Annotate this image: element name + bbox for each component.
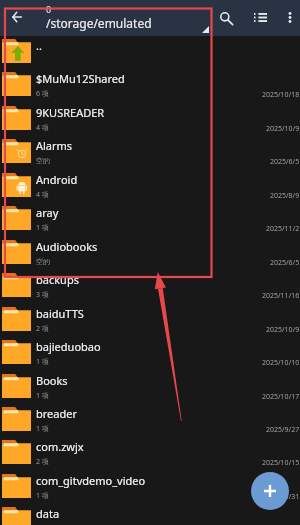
staticText: baiduTTS <box>36 306 236 321</box>
staticText: Alarms <box>36 138 236 153</box>
staticText: Android <box>36 172 236 187</box>
staticText: 2 项 <box>36 457 49 467</box>
staticText: 2025/10/31 <box>262 492 300 502</box>
staticText: 1 项 <box>36 491 49 501</box>
button[interactable]: View mode <box>247 4 273 32</box>
staticText: Audiobooks <box>36 239 236 254</box>
button[interactable]: bajieduobao <box>0 337 300 370</box>
staticText: data <box>36 506 236 521</box>
button[interactable]: Audiobooks <box>0 237 300 270</box>
staticText: aray <box>36 205 236 220</box>
staticText: 4 项 <box>36 190 49 200</box>
staticText: backups <box>36 272 236 287</box>
staticText: 空的 <box>36 257 50 266</box>
staticText: com.zwjx <box>36 439 236 454</box>
staticText: 2025/6/5 <box>270 157 300 167</box>
staticText: 1 项 <box>36 391 49 401</box>
staticText: 2 项 <box>36 324 49 334</box>
staticText: breader <box>36 406 236 421</box>
staticText: 2025/10/17 <box>262 392 300 402</box>
button[interactable]: data <box>0 504 300 525</box>
staticText: 1 项 <box>36 424 49 434</box>
staticText: 2025/9/27 <box>266 425 300 435</box>
staticText: 2025/10/18 <box>262 90 300 100</box>
staticText: Books <box>36 373 236 388</box>
button[interactable]: aray <box>0 203 300 236</box>
button[interactable]: breader <box>0 404 300 437</box>
button[interactable]: Alarms <box>0 136 300 169</box>
staticText: 4 项 <box>36 123 49 133</box>
staticText: bajieduobao <box>36 339 236 354</box>
button[interactable]: Search <box>213 4 239 32</box>
button[interactable]: 9KUSREADER <box>0 103 300 136</box>
staticText: 1 项 <box>36 223 49 233</box>
staticText: /storage/emulated <box>46 15 152 31</box>
staticText: 2025/11/2 <box>266 224 300 234</box>
button[interactable]: $MuMu12Shared <box>0 69 300 102</box>
staticText: 6 项 <box>36 89 49 99</box>
staticText: 2025/10/9 <box>266 124 300 134</box>
staticText: 3 项 <box>36 290 49 300</box>
staticText: 2025/10/15 <box>262 458 300 468</box>
button[interactable]: 0 <box>40 1 210 35</box>
staticText: 0 <box>46 3 52 15</box>
staticText: 2025/8/9 <box>270 191 300 201</box>
staticText: 1 项 <box>36 357 49 367</box>
staticText: .. <box>36 38 236 53</box>
staticText: 2025/10/9 <box>266 325 300 335</box>
staticText: com_gitvdemo_video <box>36 473 236 488</box>
staticText: 2025/10/10 <box>262 358 300 368</box>
button[interactable]: More options <box>277 4 300 32</box>
staticText: 2025/11/16 <box>262 291 300 301</box>
button[interactable]: Back <box>5 5 29 31</box>
staticText: $MuMu12Shared <box>36 71 236 86</box>
staticText: 2025/6/5 <box>270 258 300 268</box>
button[interactable]: Android <box>0 170 300 203</box>
button[interactable]: baiduTTS <box>0 304 300 337</box>
button[interactable]: backups <box>0 270 300 303</box>
button[interactable]: com_gitvdemo_video <box>0 471 300 504</box>
staticText: 空的 <box>36 156 50 165</box>
button[interactable]: Add <box>251 472 289 510</box>
button[interactable]: com.zwjx <box>0 437 300 470</box>
staticText: 9KUSREADER <box>36 105 236 120</box>
button[interactable]: .. <box>0 36 300 69</box>
button[interactable]: Books <box>0 371 300 404</box>
